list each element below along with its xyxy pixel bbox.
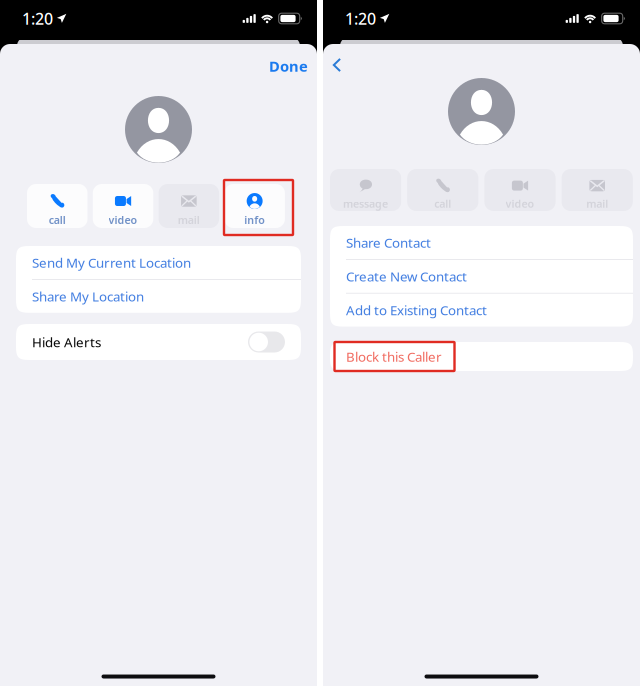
staticText: Add to Existing Contact — [346, 301, 487, 319]
button[interactable]: call — [27, 184, 87, 228]
button[interactable]: mail — [159, 184, 219, 228]
staticText: video — [505, 196, 534, 211]
staticText: mail — [586, 196, 608, 211]
staticText: message — [343, 196, 388, 211]
staticText: call — [434, 196, 451, 211]
staticText: Create New Contact — [346, 267, 467, 285]
button[interactable]: Add to Existing Contact — [330, 294, 633, 327]
staticText: Share Contact — [346, 234, 431, 251]
button[interactable]: Share Contact — [330, 226, 633, 259]
staticText: Hide Alerts — [32, 333, 101, 351]
staticText: 1:20 — [345, 8, 376, 29]
button[interactable]: Share My Location — [16, 280, 301, 313]
staticText: call — [49, 213, 66, 227]
button[interactable]: info — [224, 184, 285, 228]
staticText: Send My Current Location — [32, 254, 191, 271]
button[interactable]: video — [484, 169, 556, 211]
button[interactable]: message — [330, 169, 401, 211]
button[interactable]: call — [407, 169, 478, 211]
button[interactable]: Block this Caller — [330, 342, 633, 371]
button[interactable]: video — [93, 184, 153, 228]
button[interactable]: Send My Current Location — [16, 246, 301, 279]
staticText: Done — [269, 56, 308, 76]
staticText: info — [244, 213, 265, 227]
staticText: mail — [178, 213, 200, 227]
staticText: video — [108, 213, 137, 227]
button[interactable]: mail — [562, 169, 633, 211]
button[interactable]: Back — [322, 51, 352, 79]
button[interactable]: Hide Alerts — [16, 324, 301, 360]
staticText: Block this Caller — [346, 348, 442, 365]
button[interactable]: Done — [259, 52, 317, 80]
button[interactable]: Create New Contact — [330, 260, 633, 293]
staticText: Share My Location — [32, 287, 144, 305]
staticText: 1:20 — [22, 8, 53, 29]
